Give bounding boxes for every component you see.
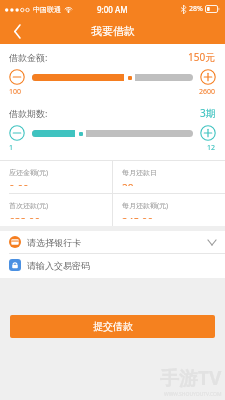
button[interactable]: Increase bbox=[200, 125, 216, 141]
staticText: 245.00 bbox=[122, 215, 154, 219]
staticText: 28 bbox=[122, 181, 134, 186]
staticText: 2600 bbox=[199, 87, 216, 97]
staticText: 28% bbox=[189, 4, 203, 14]
staticText: 手游TV bbox=[160, 365, 222, 391]
button[interactable]: Slider handle bbox=[124, 72, 135, 83]
staticText: 借款金额: bbox=[9, 51, 48, 63]
staticText: 请选择银行卡 bbox=[27, 237, 208, 248]
staticText: 中国联通 bbox=[33, 5, 61, 14]
staticText: 9:00 AM bbox=[97, 4, 128, 15]
staticText: 100 bbox=[9, 87, 22, 97]
staticText: 632.00 bbox=[9, 215, 41, 219]
staticText: 借款期数: bbox=[9, 107, 48, 119]
button[interactable]: Slider handle bbox=[75, 128, 86, 139]
staticText: 1 bbox=[9, 143, 14, 153]
staticText: 首次还款(元) bbox=[9, 201, 49, 211]
button[interactable]: Decrease bbox=[9, 69, 25, 85]
staticText: WWW.SHOUYOUTV.COM bbox=[164, 391, 222, 398]
staticText: 150元 bbox=[188, 50, 216, 64]
staticText: 我要借款 bbox=[91, 24, 135, 38]
staticText: 提交借款 bbox=[93, 320, 133, 333]
staticText: 每月还款日 bbox=[122, 168, 157, 177]
staticText: 0.00 bbox=[9, 182, 29, 186]
button[interactable]: Decrease bbox=[9, 125, 25, 141]
staticText: 每月还款额(元) bbox=[122, 201, 169, 211]
staticText: 请输入交易密码 bbox=[27, 260, 90, 271]
button[interactable]: Increase bbox=[200, 69, 216, 85]
button[interactable]: 提交借款 bbox=[10, 315, 215, 338]
staticText: 12 bbox=[207, 143, 216, 153]
staticText: 3期 bbox=[200, 106, 216, 120]
button[interactable]: 请输入交易密码 bbox=[0, 254, 225, 276]
button[interactable]: 请选择银行卡 bbox=[0, 231, 225, 253]
button[interactable]: Back bbox=[0, 18, 34, 44]
staticText: 应还金额(元) bbox=[9, 168, 49, 178]
